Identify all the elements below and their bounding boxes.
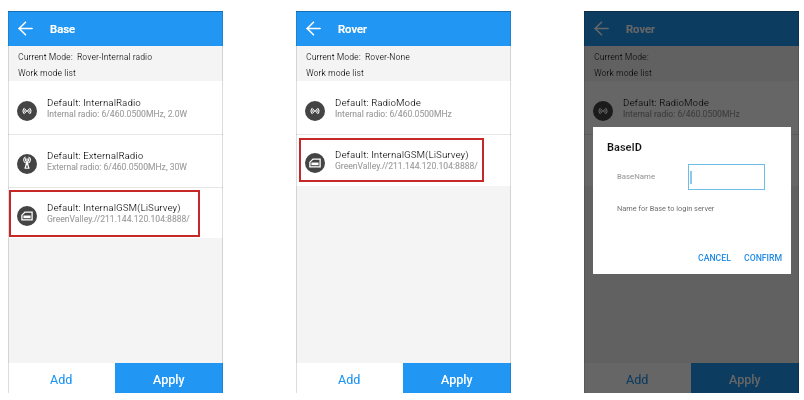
- staticText: Current Mode:: [594, 52, 649, 62]
- staticText: CANCEL: [698, 253, 731, 263]
- button[interactable]: Default: InternalGSM(LiSurvey): [8, 187, 223, 238]
- staticText: Apply: [153, 372, 185, 387]
- staticText: CONFIRM: [744, 253, 783, 263]
- staticText: Rover: [338, 23, 368, 36]
- staticText: Add: [50, 372, 73, 387]
- button[interactable]: BaseName input: [688, 164, 765, 190]
- button[interactable]: Back: [584, 11, 618, 46]
- staticText: Rover-Internal radio: [77, 52, 153, 62]
- button[interactable]: Back: [296, 11, 330, 46]
- staticText: Work mode list: [306, 68, 364, 78]
- staticText: Default: InternalGSM(LiSurvey): [47, 202, 181, 213]
- staticText: BaseName: [617, 172, 656, 181]
- button[interactable]: Default: InternalGSM(LiSurvey): [584, 134, 799, 186]
- button[interactable]: Add: [8, 363, 115, 393]
- button[interactable]: Default: InternalGSM(LiSurvey): [296, 134, 511, 186]
- button[interactable]: Apply: [691, 363, 799, 393]
- staticText: Work mode list: [594, 68, 652, 78]
- button[interactable]: Apply: [115, 363, 223, 393]
- staticText: Base: [50, 23, 76, 36]
- staticText: Rover: [626, 23, 656, 36]
- staticText: Default: InternalGSM(LiSurvey): [623, 149, 757, 160]
- staticText: Add: [338, 372, 361, 387]
- button[interactable]: Default: RadioMode: [296, 81, 511, 134]
- staticText: Default: RadioMode: [335, 97, 421, 108]
- button[interactable]: CONFIRM: [740, 252, 787, 264]
- staticText: Current Mode:: [306, 52, 361, 62]
- staticText: Internal radio: 6/460.0500MHz: [623, 109, 740, 119]
- staticText: Internal radio: 6/460.0500MHz: [335, 109, 452, 119]
- staticText: Apply: [729, 372, 761, 387]
- staticText: Default: RadioMode: [623, 97, 709, 108]
- staticText: BaseID: [607, 141, 642, 154]
- button[interactable]: Add: [584, 363, 691, 393]
- staticText: GreenValley.//211.144.120.104:8888/: [623, 161, 766, 171]
- staticText: Add: [626, 372, 649, 387]
- button[interactable]: Add: [296, 363, 403, 393]
- staticText: External radio: 6/460.0500MHz, 30W: [47, 162, 187, 172]
- button[interactable]: Apply: [403, 363, 511, 393]
- button[interactable]: Back: [8, 11, 42, 46]
- button[interactable]: CANCEL: [694, 252, 735, 264]
- staticText: Default: ExternalRadio: [47, 150, 144, 161]
- staticText: Default: InternalGSM(LiSurvey): [335, 149, 469, 160]
- button[interactable]: Default: ExternalRadio: [8, 134, 223, 187]
- staticText: GreenValley.//211.144.120.104:8888/: [335, 161, 478, 171]
- button[interactable]: Default: RadioMode: [584, 81, 799, 134]
- staticText: Name for Base to login server: [617, 204, 715, 213]
- staticText: Apply: [441, 372, 473, 387]
- staticText: Default: InternalRadio: [47, 97, 141, 108]
- staticText: Rover-None: [365, 52, 410, 62]
- staticText: Current Mode:: [18, 52, 73, 62]
- staticText: Work mode list: [18, 68, 76, 78]
- button[interactable]: Default: InternalRadio: [8, 81, 223, 134]
- staticText: GreenValley.//211.144.120.104:8888/: [47, 214, 190, 224]
- staticText: Internal radio: 6/460.0500MHz, 2.0W: [47, 109, 188, 119]
